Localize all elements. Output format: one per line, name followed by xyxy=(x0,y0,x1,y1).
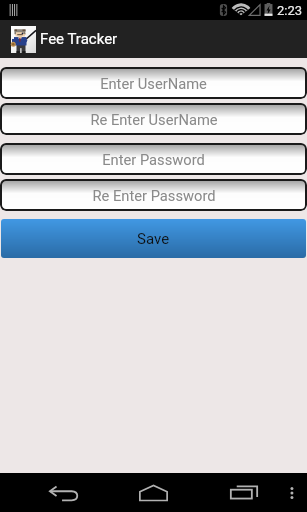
button[interactable]: Recent apps xyxy=(230,484,258,499)
staticText: Re Enter Password xyxy=(92,187,216,204)
button[interactable]: Enter Password xyxy=(0,143,307,175)
button[interactable]: Home xyxy=(139,485,168,501)
button[interactable]: Save xyxy=(1,219,306,258)
staticText: Enter Password xyxy=(102,151,205,168)
staticText: Fee Tracker xyxy=(40,30,118,48)
button[interactable]: Back xyxy=(49,486,78,501)
button[interactable]: Re Enter Password xyxy=(0,179,307,211)
staticText: Enter UserName xyxy=(100,75,207,92)
staticText: Re Enter UserName xyxy=(90,111,218,128)
button[interactable]: Enter UserName xyxy=(0,67,307,99)
staticText: Save xyxy=(137,230,170,248)
button[interactable]: More options xyxy=(287,487,298,500)
staticText: 2:23 xyxy=(277,3,303,18)
button[interactable]: Re Enter UserName xyxy=(0,103,307,135)
